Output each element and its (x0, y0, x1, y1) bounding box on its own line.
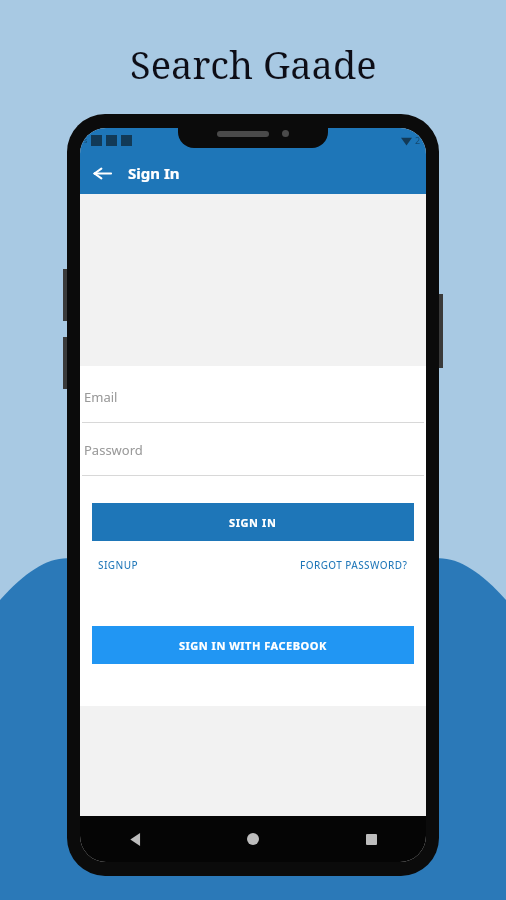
staticText: Search Gaade (130, 38, 377, 90)
button[interactable]: SIGN IN (92, 503, 414, 541)
button[interactable]: Back (84, 155, 120, 191)
button[interactable]: Password (82, 441, 424, 476)
staticText: FORGOT PASSWORD? (300, 558, 408, 572)
button[interactable]: Email (82, 388, 424, 423)
staticText: SIGNUP (98, 558, 138, 572)
staticText: Password (84, 441, 143, 459)
staticText: s (84, 136, 88, 146)
staticText: Email (84, 388, 118, 406)
button[interactable]: FORGOT PASSWORD? (300, 558, 408, 572)
button[interactable]: SIGN IN WITH FACEBOOK (92, 626, 414, 664)
button[interactable]: Home (236, 822, 270, 856)
staticText: SIGN IN (229, 515, 277, 530)
button[interactable]: SIGNUP (98, 558, 138, 572)
button[interactable]: Recent apps (354, 822, 388, 856)
staticText: 2 (415, 134, 421, 146)
staticText: SIGN IN WITH FACEBOOK (179, 638, 327, 653)
staticText: Sign In (128, 163, 180, 183)
button[interactable]: Back (118, 822, 152, 856)
